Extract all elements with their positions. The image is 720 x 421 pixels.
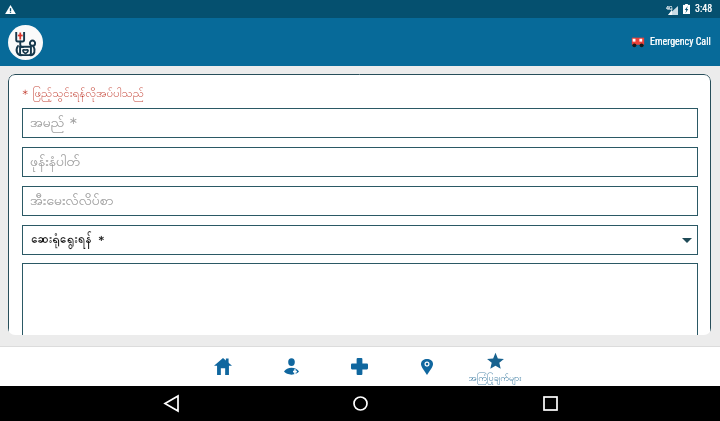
button[interactable]: အမည် * [22,108,698,138]
staticText: 3:48 [695,3,713,15]
staticText: Emergency Call [650,36,711,48]
staticText: * ဖြည့်သွင်းရန်လိုအပ်ပါသည် [22,86,144,103]
button[interactable]: Back [152,386,190,421]
staticText: ဆေးရုံရွေးရန် * [31,231,105,249]
staticText: အီးမေးလ်လိပ်စာ [30,191,114,212]
button[interactable]: Add new [325,347,393,386]
button[interactable]: ဆေးရုံရွေးရန် * [22,225,698,255]
button[interactable] [22,263,698,335]
button[interactable]: Nearby locations [393,347,461,386]
button[interactable]: Home [341,386,379,421]
staticText: အမည် * [30,113,78,134]
button[interactable]: ဖုန်းနံပါတ် [22,147,698,177]
staticText: 4G [666,4,673,11]
staticText: အကြံပြုချက်များ [468,372,522,385]
button[interactable]: အီးမေးလ်လိပ်စာ [22,186,698,216]
button[interactable]: App logo [8,25,43,60]
button[interactable]: Emergency Call [631,36,711,48]
button[interactable]: Register patient [257,347,325,386]
button[interactable]: အကြံပြုချက်များ [461,347,529,386]
button[interactable]: Home [189,347,257,386]
staticText: ဖုန်းနံပါတ် [30,152,81,173]
button[interactable]: Recents [531,386,569,421]
